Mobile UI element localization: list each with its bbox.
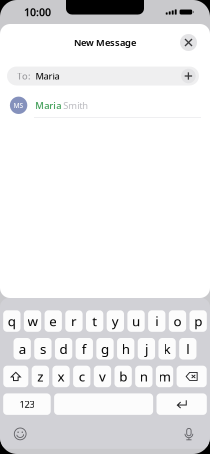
button[interactable]: 123 bbox=[3, 393, 51, 415]
staticText: r bbox=[71, 312, 77, 330]
button[interactable]: Dictation bbox=[179, 427, 199, 441]
staticText: t bbox=[92, 312, 97, 330]
staticText: Smith bbox=[61, 99, 88, 111]
button[interactable]: g bbox=[96, 338, 114, 359]
staticText: c bbox=[79, 368, 85, 385]
button[interactable]: s bbox=[34, 338, 51, 359]
staticText: p bbox=[194, 312, 202, 330]
button[interactable]: k bbox=[158, 338, 176, 359]
staticText: New Message bbox=[74, 36, 136, 49]
staticText: l bbox=[186, 340, 189, 358]
staticText: d bbox=[60, 340, 68, 358]
staticText: g bbox=[101, 340, 109, 358]
button[interactable]: Add contact bbox=[180, 68, 196, 84]
staticText: u bbox=[132, 312, 140, 330]
staticText: k bbox=[164, 340, 171, 358]
button[interactable]: h bbox=[117, 338, 134, 359]
staticText: q bbox=[8, 312, 16, 330]
staticText: x bbox=[58, 368, 65, 385]
staticText: v bbox=[99, 368, 106, 385]
button[interactable]: space bbox=[54, 393, 153, 415]
staticText: b bbox=[119, 368, 127, 385]
staticText: y bbox=[112, 312, 119, 330]
button[interactable]: u bbox=[127, 310, 145, 332]
button[interactable]: n bbox=[135, 366, 152, 387]
button[interactable]: return bbox=[156, 393, 207, 415]
button[interactable]: j bbox=[138, 338, 155, 359]
button[interactable]: b bbox=[114, 366, 132, 387]
staticText: m bbox=[159, 368, 171, 385]
staticText: Maria bbox=[35, 99, 61, 111]
staticText: To: bbox=[17, 70, 31, 82]
staticText: s bbox=[40, 340, 46, 358]
button[interactable]: l bbox=[179, 338, 196, 359]
button[interactable]: i bbox=[148, 310, 165, 332]
staticText: e bbox=[49, 312, 57, 330]
staticText: n bbox=[140, 368, 148, 385]
button[interactable]: r bbox=[65, 310, 83, 332]
staticText: i bbox=[155, 312, 158, 330]
button[interactable]: Emoji keyboard bbox=[10, 427, 30, 441]
button[interactable]: w bbox=[24, 310, 41, 332]
staticText: MS bbox=[14, 101, 24, 110]
button[interactable]: v bbox=[94, 366, 111, 387]
button[interactable]: q bbox=[3, 310, 20, 332]
button[interactable]: p bbox=[189, 310, 207, 332]
staticText: w bbox=[27, 312, 37, 330]
button[interactable]: a bbox=[13, 338, 31, 359]
button[interactable]: MS bbox=[0, 93, 210, 118]
staticText: o bbox=[173, 312, 181, 330]
staticText: 10:00 bbox=[24, 5, 51, 19]
staticText: j bbox=[145, 340, 148, 358]
button[interactable]: m bbox=[156, 366, 173, 387]
button[interactable]: Close bbox=[178, 32, 199, 53]
button[interactable]: o bbox=[169, 310, 186, 332]
button[interactable]: delete bbox=[177, 366, 207, 387]
button[interactable]: z bbox=[32, 366, 49, 387]
button[interactable]: e bbox=[45, 310, 62, 332]
button[interactable]: x bbox=[52, 366, 70, 387]
button[interactable]: c bbox=[73, 366, 90, 387]
button[interactable]: f bbox=[76, 338, 93, 359]
button[interactable]: t bbox=[86, 310, 103, 332]
staticText: h bbox=[122, 340, 130, 358]
staticText: 123 bbox=[19, 398, 34, 410]
staticText: a bbox=[19, 340, 26, 358]
button[interactable]: shift bbox=[3, 366, 28, 387]
button[interactable]: d bbox=[55, 338, 72, 359]
staticText: f bbox=[82, 340, 87, 358]
button[interactable]: y bbox=[107, 310, 124, 332]
staticText: Maria bbox=[35, 70, 59, 82]
staticText: z bbox=[37, 368, 43, 385]
